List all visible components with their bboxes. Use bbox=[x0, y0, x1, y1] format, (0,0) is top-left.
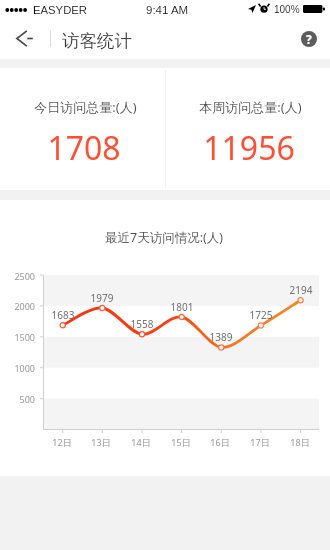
staticText: EASYDER bbox=[33, 4, 87, 17]
staticText: 12日 bbox=[48, 436, 76, 448]
staticText: 今日访问总量:(人) bbox=[34, 98, 137, 116]
staticText: 1683 bbox=[49, 308, 77, 322]
staticText: 1558 bbox=[128, 317, 156, 331]
staticText: 18日 bbox=[286, 436, 314, 448]
staticText: 本周访问总量:(人) bbox=[199, 98, 302, 116]
staticText: ? bbox=[306, 31, 312, 47]
staticText: 1500 bbox=[7, 331, 35, 343]
staticText: 17日 bbox=[246, 436, 274, 448]
staticText: 1389 bbox=[207, 330, 235, 344]
staticText: 访客统计 bbox=[62, 30, 132, 52]
staticText: 15日 bbox=[167, 436, 195, 448]
staticText: 1801 bbox=[168, 300, 196, 314]
staticText: 16日 bbox=[206, 436, 234, 448]
staticText: 9:41 AM bbox=[146, 4, 189, 17]
staticText: 2194 bbox=[287, 283, 315, 297]
button[interactable]: 今日访问总量:(人) bbox=[0, 68, 165, 190]
staticText: 2000 bbox=[7, 300, 35, 312]
staticText: 1708 bbox=[47, 126, 121, 170]
button[interactable]: 本周访问总量:(人) bbox=[165, 68, 330, 190]
staticText: 13日 bbox=[87, 436, 115, 448]
staticText: 2500 bbox=[7, 270, 35, 282]
staticText: 最近7天访问情况:(人) bbox=[105, 229, 224, 246]
staticText: 1725 bbox=[247, 308, 275, 322]
button[interactable]: Help bbox=[294, 24, 323, 53]
staticText: 100% bbox=[274, 4, 300, 15]
staticText: 14日 bbox=[127, 436, 155, 448]
staticText: 500 bbox=[7, 393, 35, 405]
staticText: 1000 bbox=[7, 362, 35, 374]
staticText: 1979 bbox=[88, 291, 116, 305]
staticText: 11956 bbox=[203, 126, 295, 170]
button[interactable]: Back bbox=[6, 21, 40, 57]
